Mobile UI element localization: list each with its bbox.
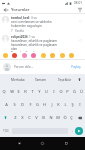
- staticText: X: [21, 115, 24, 120]
- staticText: F: [29, 102, 32, 107]
- button[interactable]: K: [55, 98, 62, 111]
- staticText: H: [43, 102, 46, 107]
- button[interactable]: .: [70, 124, 75, 137]
- button[interactable]: J: [48, 98, 55, 111]
- button[interactable]: Paylaş: [70, 64, 82, 70]
- staticText: N: [49, 115, 53, 120]
- staticText: U: [45, 89, 48, 94]
- staticText: Teşekkür: [58, 78, 72, 82]
- staticText: Ğ: [73, 89, 76, 94]
- button[interactable]: I: [76, 98, 83, 111]
- button[interactable]: C: [26, 111, 33, 124]
- button[interactable]: React: [3, 53, 8, 58]
- staticText: ?123: [3, 129, 9, 133]
- staticText: K: [57, 102, 60, 107]
- staticText: I: [79, 102, 81, 107]
- staticText: Yorumlar: [11, 7, 30, 13]
- button[interactable]: T: [29, 85, 36, 98]
- staticText: Z: [14, 115, 17, 120]
- staticText: M: [56, 115, 60, 120]
- staticText: E: [17, 89, 20, 94]
- button[interactable]: W: [8, 85, 15, 98]
- button[interactable]: React: [22, 53, 27, 58]
- button[interactable]: Ğ: [71, 85, 78, 98]
- button[interactable]: Back: [2, 6, 9, 13]
- button[interactable]: L: [62, 98, 69, 111]
- button[interactable]: React: [31, 53, 36, 58]
- staticText: hazardinan, etkinlik ve paglasam hazardi…: [11, 39, 61, 52]
- button[interactable]: Back: [15, 139, 24, 148]
- staticText: O: [59, 89, 63, 94]
- staticText: B: [42, 115, 45, 120]
- button[interactable]: Like: [77, 18, 83, 24]
- staticText: tombul_kedi: [11, 16, 30, 20]
- button[interactable]: A: [2, 98, 10, 111]
- button[interactable]: Shift: [0, 111, 11, 124]
- staticText: Paylaş: [71, 65, 81, 69]
- staticText: 08:01: [74, 1, 83, 5]
- staticText: S: [13, 102, 16, 107]
- staticText: C: [28, 115, 31, 120]
- staticText: .: [72, 128, 74, 133]
- button[interactable]: Tamam: [29, 78, 53, 82]
- staticText: R: [24, 89, 27, 94]
- button[interactable]: H: [41, 98, 48, 111]
- button[interactable]: U: [43, 85, 50, 98]
- staticText: Ç: [70, 115, 73, 120]
- button[interactable]: B: [40, 111, 47, 124]
- staticText: Ü: [80, 89, 83, 94]
- button[interactable]: React: [41, 53, 46, 58]
- button[interactable]: Teşekkür: [53, 78, 77, 82]
- staticText: Ö: [63, 115, 67, 120]
- staticText: V: [35, 115, 38, 120]
- staticText: Yanıtla: [15, 29, 24, 33]
- button[interactable]: Home: [38, 139, 47, 148]
- button[interactable]: Merhaba: [6, 78, 29, 82]
- staticText: 1 sa: [29, 35, 35, 39]
- button[interactable]: R: [22, 85, 29, 98]
- staticText: Q: [2, 89, 6, 94]
- button[interactable]: D: [18, 98, 26, 111]
- button[interactable]: E: [15, 85, 22, 98]
- button[interactable]: G: [34, 98, 41, 111]
- button[interactable]: Like: [77, 37, 83, 43]
- button[interactable]: F: [26, 98, 34, 111]
- button[interactable]: Ö: [61, 111, 68, 124]
- button[interactable]: Z: [11, 111, 19, 124]
- button[interactable]: Ü: [78, 85, 85, 98]
- staticText: G: [36, 102, 39, 107]
- button[interactable]: N: [47, 111, 54, 124]
- button[interactable]: Recents: [62, 139, 71, 148]
- button[interactable]: S: [10, 98, 18, 111]
- button[interactable]: tombul_kedi: [0, 16, 85, 33]
- button[interactable]: Q: [0, 85, 8, 98]
- staticText: Ş: [71, 102, 74, 107]
- button[interactable]: Send: [75, 127, 83, 135]
- button[interactable]: P: [64, 85, 71, 98]
- staticText: seni correlamam ve saldırdın hubeimlen s…: [11, 20, 52, 28]
- button[interactable]: Ş: [69, 98, 76, 111]
- button[interactable]: X: [19, 111, 26, 124]
- button[interactable]: O: [57, 85, 64, 98]
- staticText: T: [31, 89, 34, 94]
- button[interactable]: Ç: [68, 111, 75, 124]
- staticText: A: [5, 102, 8, 107]
- button[interactable]: V: [33, 111, 40, 124]
- button[interactable]: More: [77, 77, 82, 82]
- button[interactable]: React: [50, 53, 55, 58]
- staticText: 3 sa: [31, 16, 37, 20]
- staticText: P: [66, 89, 69, 94]
- button[interactable]: ?123: [1, 124, 10, 137]
- button[interactable]: Sort: [76, 6, 83, 13]
- button[interactable]: M: [54, 111, 61, 124]
- button[interactable]: React: [12, 53, 17, 58]
- staticText: Y: [38, 89, 41, 94]
- button[interactable]: React: [60, 53, 65, 58]
- button[interactable]: I: [50, 85, 57, 98]
- button[interactable]: Backspace: [75, 111, 85, 124]
- button[interactable]: eclipst2026: [0, 35, 85, 52]
- button[interactable]: React: [69, 53, 74, 58]
- staticText: 7: [11, 29, 13, 33]
- button[interactable]: Y: [36, 85, 43, 98]
